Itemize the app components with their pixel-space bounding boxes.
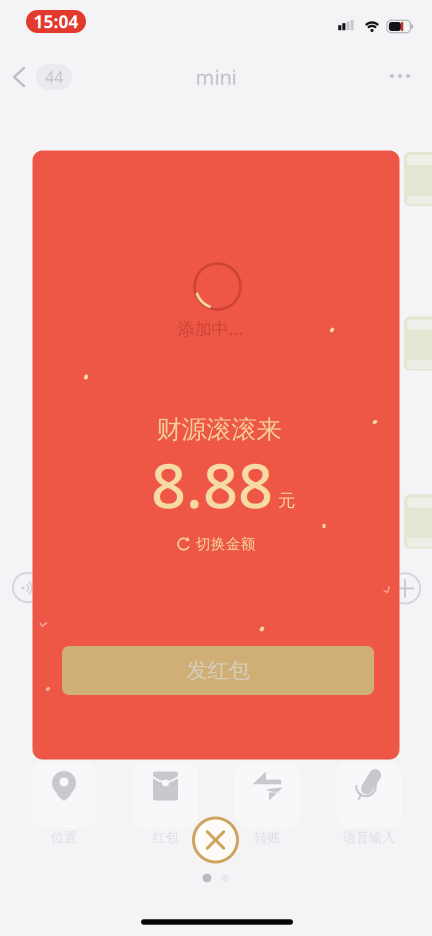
button[interactable]: 转账 [234,762,300,828]
staticText: 切换金额 [196,535,256,553]
staticText: 语音输入 [343,829,395,846]
staticText: 15:04 [33,10,78,33]
staticText: 财源滚滚来 [156,414,281,445]
button[interactable]: 语音输入 [336,762,402,828]
button[interactable]: Unread chats [36,64,72,90]
staticText: 元 [278,490,295,511]
button[interactable]: 位置 [31,762,97,828]
button[interactable]: 红包 [132,762,198,828]
staticText: 转账 [254,829,280,846]
button[interactable]: Recording time [26,10,86,33]
button[interactable]: 发红包 [62,646,374,695]
staticText: 位置 [51,829,77,846]
button[interactable]: Back [9,63,29,91]
staticText: 发红包 [186,657,249,684]
staticText: mini [195,64,236,90]
staticText: 红包 [152,829,178,846]
staticText: 8.88 [151,444,273,525]
staticText: 44 [45,66,63,88]
button[interactable]: 切换金额 [171,529,262,559]
staticText: 添加中... [177,317,243,340]
button[interactable]: Close [193,818,237,862]
button[interactable]: More [382,66,418,86]
